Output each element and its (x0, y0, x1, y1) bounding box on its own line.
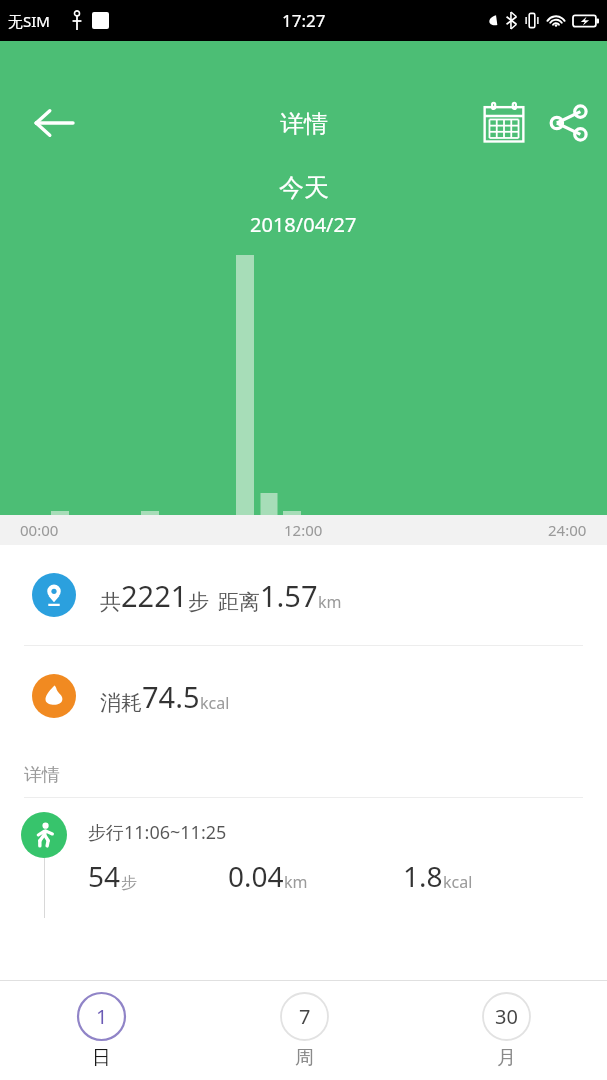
button[interactable]: 消耗 (0, 646, 607, 746)
staticText: 1.8 (403, 857, 443, 895)
staticText: 30 (495, 1003, 518, 1030)
staticText: 距离 (218, 589, 260, 615)
staticText: 17:27 (282, 9, 326, 32)
button[interactable]: 共 (0, 545, 607, 645)
button[interactable]: 步行11:06~11:25 (0, 798, 607, 980)
staticText: 详情 (24, 764, 60, 787)
staticText: 7 (299, 1003, 311, 1030)
button[interactable]: 30 (405, 981, 607, 1080)
staticText: 步行11:06~11:25 (88, 820, 227, 845)
staticText: 步 (121, 873, 137, 893)
staticText: 今天 (279, 172, 329, 203)
button[interactable]: Share (541, 97, 597, 149)
staticText: 无SIM (8, 11, 50, 31)
staticText: 月 (497, 1046, 516, 1070)
staticText: 54 (88, 857, 121, 895)
staticText: 12:00 (284, 520, 323, 540)
staticText: 消耗 (100, 690, 142, 716)
button[interactable]: Calendar (476, 97, 532, 149)
staticText: 共 (100, 589, 121, 615)
staticText: 74.5 (142, 677, 200, 716)
staticText: 0.04 (228, 857, 284, 895)
staticText: 周 (295, 1046, 314, 1070)
staticText: 步 (188, 589, 209, 615)
staticText: km (284, 871, 308, 893)
button[interactable]: 7 (203, 981, 405, 1080)
staticText: 日 (92, 1046, 111, 1070)
staticText: 2221 (121, 576, 188, 615)
staticText: kcal (443, 871, 473, 893)
staticText: 2018/04/27 (250, 211, 357, 238)
staticText: kcal (200, 692, 230, 714)
staticText: 24:00 (548, 520, 587, 540)
staticText: 00:00 (20, 520, 59, 540)
staticText: km (318, 591, 342, 613)
button[interactable]: Back (24, 97, 82, 149)
staticText: 详情 (280, 109, 328, 139)
staticText: 1 (96, 1003, 108, 1030)
staticText: 1.57 (260, 576, 318, 615)
button[interactable]: 1 (0, 981, 203, 1080)
